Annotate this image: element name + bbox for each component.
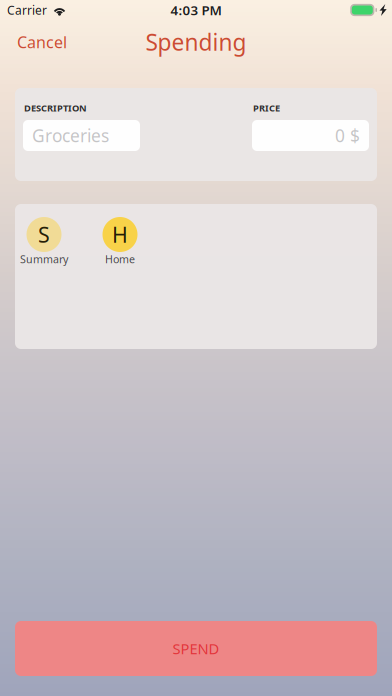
staticText: H xyxy=(112,220,128,249)
staticText: Home xyxy=(105,252,135,266)
staticText: Carrier xyxy=(7,2,47,18)
button[interactable]: SPEND xyxy=(15,621,377,676)
staticText: Groceries xyxy=(32,124,109,147)
staticText: S xyxy=(38,220,50,249)
staticText: Spending xyxy=(145,27,246,57)
staticText: SPEND xyxy=(172,639,219,658)
staticText: Summary xyxy=(20,252,68,266)
staticText: 4:03 PM xyxy=(170,1,221,19)
button[interactable]: H xyxy=(91,217,149,268)
staticText: 0 $ xyxy=(335,124,360,147)
staticText: PRICE xyxy=(253,102,280,114)
button[interactable]: Cancel xyxy=(0,20,79,64)
staticText: Cancel xyxy=(17,31,67,53)
button[interactable]: S xyxy=(15,217,73,268)
staticText: DESCRIPTION xyxy=(24,102,87,114)
